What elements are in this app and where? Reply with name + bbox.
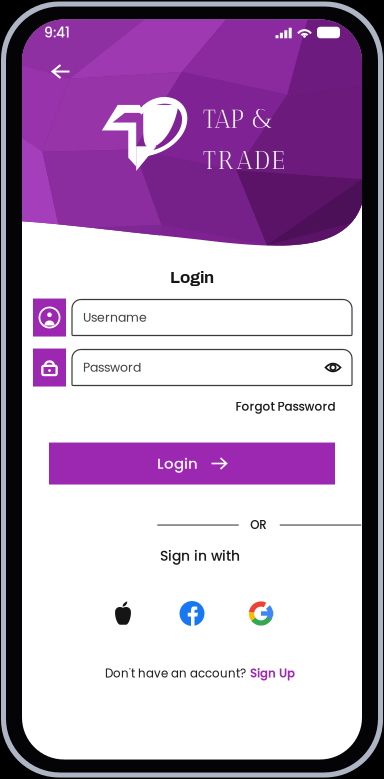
button[interactable]: Sign in with Google [246, 599, 276, 627]
staticText: Password [83, 359, 141, 376]
button[interactable]: Back [41, 52, 81, 90]
button[interactable]: Forgot Password [235, 399, 335, 413]
staticText: TRADE [203, 146, 284, 175]
staticText: TAP & [203, 104, 272, 134]
staticText: Sign Up [250, 665, 295, 682]
staticText: Login [157, 453, 198, 474]
button[interactable]: Sign Up [250, 665, 295, 682]
staticText: Login [170, 268, 214, 287]
staticText: Don't have an account? [105, 665, 246, 682]
button[interactable]: Sign in with Apple [108, 599, 138, 627]
button[interactable]: Show password [325, 359, 341, 375]
staticText: Sign in with [160, 546, 240, 566]
button[interactable]: Login [49, 442, 335, 484]
staticText: OR [250, 517, 266, 533]
button[interactable]: Sign in with Facebook [177, 599, 207, 627]
staticText: Username [83, 309, 147, 326]
staticText: Forgot Password [235, 398, 335, 415]
staticText: 9:41 [44, 23, 70, 42]
